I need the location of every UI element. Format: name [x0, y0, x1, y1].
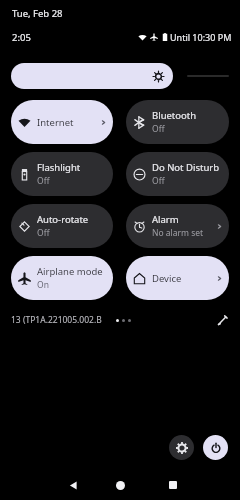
staticText: Flashlight — [37, 161, 81, 174]
button[interactable]: Airplane mode — [11, 256, 113, 300]
staticText: Internet — [37, 116, 74, 129]
staticText: Auto-rotate — [37, 213, 89, 226]
button[interactable]: Back — [62, 474, 84, 496]
button[interactable]: Alarm — [126, 204, 229, 248]
button[interactable]: Recents — [162, 474, 184, 496]
staticText: Until 10:30 PM — [170, 31, 232, 43]
staticText: Tue, Feb 28 — [12, 7, 63, 20]
button[interactable]: Edit tiles — [214, 312, 230, 328]
staticText: Airplane mode — [37, 265, 103, 278]
staticText: Off — [152, 123, 165, 135]
staticText: Off — [37, 175, 50, 187]
staticText: Do Not Disturb — [152, 161, 220, 174]
staticText: No alarm set — [152, 227, 204, 239]
staticText: 2:05 — [12, 31, 31, 44]
staticText: Alarm — [152, 213, 179, 226]
staticText: Bluetooth — [152, 109, 197, 122]
staticText: Device controls — [152, 272, 216, 285]
staticText: 13 (TP1A.221005.002.B — [11, 314, 114, 326]
staticText: Off — [152, 175, 165, 187]
button[interactable]: Brightness — [11, 63, 173, 89]
button[interactable]: Settings — [169, 435, 194, 460]
button[interactable]: Flashlight — [11, 152, 113, 196]
button[interactable]: Device controls — [126, 256, 229, 300]
button[interactable]: Do Not Disturb — [126, 152, 229, 196]
staticText: Off — [37, 227, 50, 239]
button[interactable]: Home — [109, 474, 131, 496]
button[interactable]: Auto-rotate — [11, 204, 113, 248]
button[interactable]: Bluetooth — [126, 100, 229, 144]
button[interactable]: Power — [203, 435, 228, 460]
staticText: On — [37, 279, 49, 291]
button[interactable]: Internet — [11, 100, 113, 144]
